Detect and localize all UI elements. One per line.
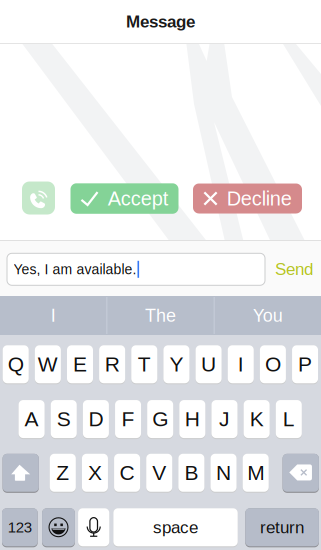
- staticText: Send: [275, 259, 313, 278]
- button[interactable]: The: [107, 296, 214, 335]
- button[interactable]: D: [83, 399, 109, 439]
- button[interactable]: X: [82, 453, 108, 492]
- staticText: I: [238, 352, 244, 376]
- button[interactable]: H: [179, 399, 205, 439]
- button[interactable]: I: [0, 296, 106, 335]
- staticText: V: [152, 461, 166, 484]
- staticText: 123: [8, 519, 32, 536]
- staticText: R: [105, 352, 120, 376]
- staticText: L: [283, 407, 295, 431]
- staticText: A: [25, 407, 39, 431]
- button[interactable]: R: [99, 344, 125, 384]
- staticText: H: [185, 407, 200, 431]
- staticText: W: [38, 352, 58, 376]
- button[interactable]: C: [114, 453, 140, 492]
- button[interactable]: Z: [50, 453, 76, 492]
- button[interactable]: space: [113, 507, 238, 547]
- button[interactable]: K: [244, 399, 270, 439]
- staticText: J: [219, 407, 230, 431]
- button[interactable]: Shift: [3, 453, 39, 492]
- button[interactable]: N: [211, 453, 237, 492]
- button[interactable]: Decline: [193, 183, 302, 213]
- button[interactable]: E: [67, 344, 93, 384]
- button[interactable]: M: [243, 453, 269, 492]
- button[interactable]: J: [211, 399, 237, 439]
- button[interactable]: L: [276, 399, 302, 439]
- staticText: O: [265, 352, 281, 376]
- staticText: Accept: [108, 187, 169, 210]
- button[interactable]: O: [260, 344, 286, 384]
- button[interactable]: Y: [163, 344, 189, 384]
- staticText: K: [250, 407, 264, 431]
- staticText: P: [298, 352, 312, 376]
- button[interactable]: S: [51, 399, 77, 439]
- staticText: I: [51, 305, 56, 325]
- staticText: M: [247, 461, 264, 484]
- staticText: T: [138, 352, 151, 376]
- button[interactable]: You: [215, 296, 321, 335]
- button[interactable]: I: [228, 344, 254, 384]
- button[interactable]: W: [35, 344, 61, 384]
- button[interactable]: F: [115, 399, 141, 439]
- button[interactable]: Send: [268, 247, 320, 291]
- staticText: B: [184, 461, 198, 484]
- button[interactable]: P: [292, 344, 318, 384]
- button[interactable]: return: [245, 507, 319, 547]
- staticText: You: [253, 305, 283, 325]
- button[interactable]: Dictation: [78, 507, 109, 547]
- staticText: Z: [56, 461, 69, 484]
- button[interactable]: 123: [2, 507, 38, 547]
- staticText: Yes, I am available.: [13, 261, 136, 277]
- button[interactable]: Delete: [283, 453, 319, 492]
- staticText: Message: [126, 12, 195, 31]
- button[interactable]: A: [19, 399, 45, 439]
- staticText: space: [153, 518, 198, 537]
- staticText: Q: [8, 352, 24, 376]
- button[interactable]: T: [131, 344, 157, 384]
- button[interactable]: Call back: [22, 181, 55, 214]
- staticText: The: [145, 305, 176, 325]
- staticText: U: [201, 352, 216, 376]
- staticText: F: [121, 407, 134, 431]
- staticText: return: [260, 518, 304, 537]
- staticText: D: [88, 407, 103, 431]
- staticText: X: [88, 461, 102, 484]
- button[interactable]: B: [178, 453, 204, 492]
- button[interactable]: V: [146, 453, 172, 492]
- staticText: N: [216, 461, 231, 484]
- staticText: E: [73, 352, 87, 376]
- staticText: Decline: [227, 187, 292, 210]
- button[interactable]: Emoji: [42, 507, 75, 547]
- button[interactable]: G: [147, 399, 173, 439]
- staticText: S: [57, 407, 71, 431]
- staticText: G: [152, 407, 168, 431]
- staticText: C: [120, 461, 135, 484]
- button[interactable]: Accept: [70, 183, 178, 214]
- button[interactable]: Q: [3, 344, 29, 384]
- staticText: Y: [169, 352, 183, 376]
- button[interactable]: U: [196, 344, 222, 384]
